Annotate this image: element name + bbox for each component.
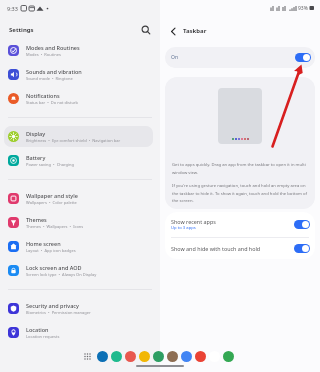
button[interactable]: Display: [4, 126, 153, 147]
button[interactable]: App 5: [167, 351, 178, 362]
staticText: Get to apps quickly. Drag an app from th…: [172, 162, 309, 175]
button[interactable]: App 3: [139, 351, 150, 362]
button[interactable]: Toggle on: [294, 220, 310, 229]
staticText: Show recent apps: [171, 218, 216, 225]
button[interactable]: Home screen: [4, 236, 153, 257]
staticText: Lock screen and AOD: [26, 264, 82, 271]
staticText: Security and privacy: [26, 302, 79, 309]
staticText: Themes: [26, 216, 47, 223]
staticText: Status bar • Do not disturb: [26, 100, 78, 105]
button[interactable]: App 2: [125, 351, 136, 362]
staticText: If you're using gesture navigation, touc…: [172, 183, 309, 203]
staticText: Battery: [26, 154, 46, 161]
staticText: Brightness • Eye comfort shield • Naviga…: [26, 138, 121, 143]
staticText: Home screen: [26, 240, 61, 247]
staticText: Show and hide with touch and hold: [171, 245, 294, 252]
staticText: Sound mode • Ringtone: [26, 76, 73, 81]
staticText: On: [171, 54, 178, 61]
button[interactable]: Show and hide with touch and hold: [165, 238, 315, 259]
button[interactable]: App 7: [195, 351, 206, 362]
button[interactable]: Battery: [4, 150, 153, 171]
staticText: Modes • Routines: [26, 52, 61, 57]
staticText: Screen lock type • Always On Display: [26, 272, 97, 277]
staticText: Layout • App icon badges: [26, 248, 76, 253]
staticText: Modes and Routines: [26, 44, 80, 51]
button[interactable]: Modes and Routines: [4, 40, 153, 61]
button[interactable]: Toggle on: [294, 244, 310, 253]
button[interactable]: App 0: [97, 351, 108, 362]
staticText: Display: [26, 130, 46, 137]
staticText: Up to 3 apps: [171, 225, 196, 231]
button[interactable]: Themes: [4, 212, 153, 233]
button[interactable]: Location: [4, 322, 153, 343]
button[interactable]: Lock screen and AOD: [4, 260, 153, 281]
button[interactable]: Search: [139, 23, 153, 37]
staticText: Settings: [9, 26, 34, 34]
button[interactable]: Toggle on: [295, 53, 311, 62]
staticText: Wallpaper and style: [26, 192, 78, 199]
staticText: Power saving • Charging: [26, 162, 74, 167]
staticText: Wallpapers • Color palette: [26, 200, 77, 205]
staticText: Notifications: [26, 92, 60, 99]
staticText: Themes • Wallpapers • Icons: [26, 224, 84, 229]
button[interactable]: App 9: [223, 351, 234, 362]
button[interactable]: Back: [167, 25, 180, 38]
staticText: Biometrics • Permission manager: [26, 310, 91, 315]
button[interactable]: On: [165, 47, 315, 68]
button[interactable]: All apps: [83, 352, 92, 361]
staticText: 9:33: [7, 5, 18, 12]
staticText: Location: [26, 326, 49, 333]
staticText: 93%: [298, 5, 308, 12]
button[interactable]: App 4: [153, 351, 164, 362]
button[interactable]: Sounds and vibration: [4, 64, 153, 85]
button[interactable]: App 6: [181, 351, 192, 362]
button[interactable]: Wallpaper and style: [4, 188, 153, 209]
staticText: Sounds and vibration: [26, 68, 82, 75]
staticText: Taskbar: [183, 27, 207, 35]
button[interactable]: Show recent apps: [165, 212, 315, 237]
staticText: Location requests: [26, 334, 60, 339]
button[interactable]: Security and privacy: [4, 298, 153, 319]
button[interactable]: App 1: [111, 351, 122, 362]
button[interactable]: Notifications: [4, 88, 153, 109]
